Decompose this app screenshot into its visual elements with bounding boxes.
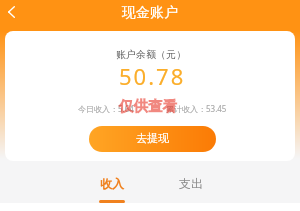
staticText: 50.78 bbox=[119, 61, 186, 91]
button[interactable]: 去提现 bbox=[89, 126, 216, 152]
staticText: 收入 bbox=[100, 176, 124, 191]
button[interactable]: Back bbox=[1, 2, 21, 22]
button[interactable]: 收入 bbox=[93, 176, 131, 203]
staticText: 累计收入：53.45 bbox=[166, 103, 227, 114]
staticText: 仅供查看 bbox=[119, 97, 178, 115]
staticText: 账户余额（元） bbox=[116, 48, 186, 61]
staticText: 支出 bbox=[179, 176, 203, 191]
button[interactable]: 支出 bbox=[172, 176, 210, 203]
staticText: 今日收入：5.64 bbox=[78, 103, 134, 114]
staticText: 现金账户 bbox=[122, 4, 178, 22]
staticText: 去提现 bbox=[136, 131, 169, 145]
